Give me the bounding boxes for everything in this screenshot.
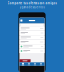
staticText: y gana descuentos (19, 5, 44, 9)
button[interactable] (19, 49, 45, 53)
button[interactable] (19, 31, 45, 35)
button[interactable]: Favourites (32, 63, 38, 65)
staticText: Comparte tus ofertas con amigos (7, 1, 56, 5)
button[interactable]: Menu (19, 18, 23, 23)
button[interactable]: Home (20, 63, 26, 65)
button[interactable] (19, 26, 45, 31)
button[interactable] (19, 35, 45, 40)
button[interactable] (19, 44, 45, 49)
button[interactable] (19, 40, 45, 44)
button[interactable] (19, 59, 31, 62)
button[interactable]: Profile (38, 63, 44, 65)
button[interactable]: Search (26, 63, 32, 65)
